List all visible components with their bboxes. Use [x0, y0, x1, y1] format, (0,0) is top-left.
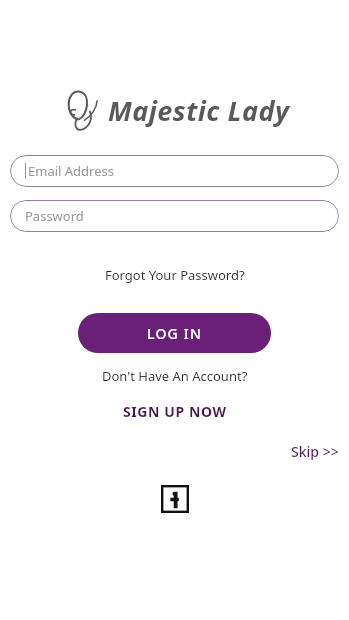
button[interactable]: Email Address — [10, 155, 339, 187]
staticText: Majestic Lady — [108, 92, 290, 129]
staticText: Email Address — [28, 162, 114, 180]
staticText: Don't Have An Account? — [102, 367, 248, 385]
button[interactable]: Skip >> — [281, 438, 349, 465]
button[interactable]: LOG IN — [78, 313, 271, 353]
staticText: Skip >> — [291, 442, 339, 461]
staticText: Password — [25, 207, 84, 225]
staticText: SIGN UP NOW — [123, 402, 227, 421]
staticText: Forgot Your Password? — [105, 266, 245, 284]
button[interactable]: Sign in with Facebook — [161, 485, 189, 513]
staticText: LOG IN — [147, 324, 203, 343]
button[interactable]: SIGN UP NOW — [113, 398, 237, 425]
button[interactable]: Password — [10, 200, 339, 232]
button[interactable]: Forgot Your Password? — [95, 262, 255, 288]
